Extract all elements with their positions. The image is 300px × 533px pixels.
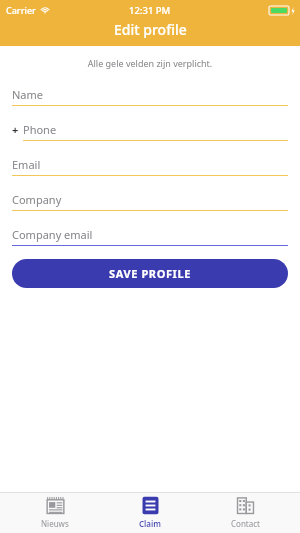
staticText: + (12, 122, 19, 137)
staticText: Contact (231, 518, 260, 529)
button[interactable]: Company (12, 192, 288, 211)
button[interactable]: Nieuws (15, 492, 95, 533)
staticText: Name (12, 87, 44, 102)
staticText: Company email (12, 227, 93, 242)
button[interactable]: Name (12, 87, 288, 106)
other: Contact (236, 496, 255, 515)
staticText: Phone (23, 122, 57, 137)
button[interactable]: Claim (110, 492, 190, 533)
button[interactable]: SAVE PROFILE (12, 259, 288, 288)
staticText: Carrier (6, 4, 36, 16)
staticText: SAVE PROFILE (109, 266, 191, 281)
other: Nieuws (46, 496, 65, 515)
staticText: Edit profile (114, 20, 187, 39)
staticText: 12:31 PM (129, 4, 171, 17)
button[interactable]: Company email (12, 227, 288, 246)
button[interactable]: Email (12, 157, 288, 176)
staticText: Email (12, 157, 41, 172)
button[interactable]: Contact (205, 492, 285, 533)
staticText: Nieuws (41, 518, 69, 529)
other: Claim (141, 496, 160, 515)
staticText: Company (12, 192, 62, 207)
staticText: Claim (139, 518, 161, 529)
button[interactable]: + (12, 122, 288, 141)
staticText: Alle gele velden zijn verplicht. (0, 57, 300, 69)
